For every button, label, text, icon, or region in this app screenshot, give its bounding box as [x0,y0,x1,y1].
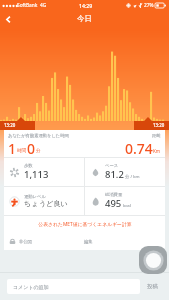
staticText: 1,113 [24,168,49,181]
staticText: 編集 [84,239,93,244]
staticText: ペース [105,163,119,168]
staticText: 27% [144,2,154,9]
staticText: 13:20 [153,122,165,128]
staticText: 非公開 [19,239,32,244]
staticText: 495 [105,197,122,210]
staticText: 距離 [152,133,161,138]
staticText: 13:20 [4,122,16,128]
staticText: 分 [36,148,41,154]
staticText: 総消費量 [105,192,123,197]
button[interactable]: 非公開 [9,238,32,245]
button[interactable]: 総消費量 [89,187,165,215]
staticText: 今日 [77,14,92,23]
staticText: 0 [27,139,36,157]
staticText: Km [153,148,161,154]
staticText: 4G [40,2,47,9]
staticText: 投稿 [147,283,158,290]
button[interactable]: 編集 [84,239,93,244]
staticText: ちょうど良い [24,199,68,208]
staticText: kcal [123,202,131,208]
staticText: 分 / km [125,173,140,179]
staticText: SoftBank [17,2,38,9]
button[interactable]: Back [0,13,16,25]
staticText: 運動レベル [24,194,46,199]
button[interactable]: 投稿 [140,279,165,294]
button[interactable]: Camera [139,246,167,274]
staticText: 歩数 [24,163,33,168]
staticText: 0.74 [125,139,153,157]
button[interactable]: ペース [89,158,165,186]
staticText: 81.2 [105,168,124,181]
button[interactable]: 歩数 [8,158,84,186]
button[interactable]: コメントの追加 [7,279,140,294]
staticText: 公表されたMET値に基づくエネルギー計算 [38,221,132,228]
button[interactable]: 運動レベル [8,187,84,215]
staticText: 時間 [17,148,27,154]
staticText: 14:29 [79,2,93,9]
staticText: コメントの追加 [13,284,49,290]
staticText: あなたが有酸素運動をした時間 [8,133,69,138]
staticText: 1 [8,139,17,157]
